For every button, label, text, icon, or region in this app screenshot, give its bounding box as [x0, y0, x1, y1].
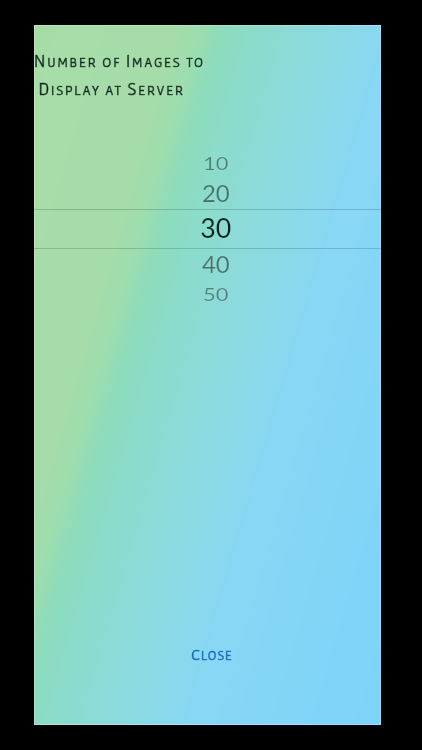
staticText: NUMBER OF IMAGES TO	[34, 51, 205, 70]
button[interactable]: 40	[34, 247, 381, 281]
staticText: DISPLAY AT SERVER	[38, 79, 185, 98]
button[interactable]: 20	[34, 176, 381, 210]
staticText: CLOSE	[191, 645, 233, 663]
staticText: 20	[202, 180, 230, 207]
button[interactable]: 30	[34, 211, 381, 245]
staticText: 30	[200, 212, 232, 245]
staticText: 40	[202, 251, 230, 278]
staticText: NUMBER OF IMAGES TO	[34, 51, 205, 70]
button[interactable]: 10	[34, 146, 381, 180]
button[interactable]: 50	[34, 277, 381, 311]
staticText: 50	[203, 284, 229, 305]
staticText: DISPLAY AT SERVER	[38, 79, 185, 98]
staticText: CLOSE	[191, 645, 233, 663]
staticText: 10	[203, 153, 229, 174]
button[interactable]: CLOSE	[34, 632, 381, 676]
